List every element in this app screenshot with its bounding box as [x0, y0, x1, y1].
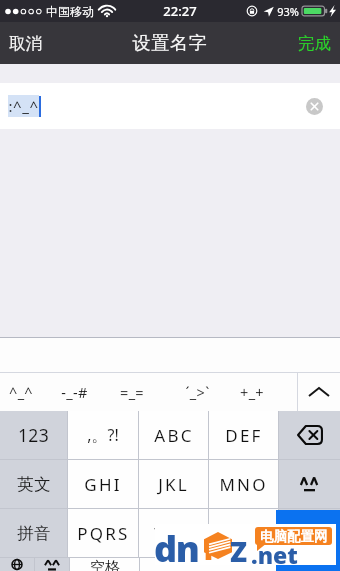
staticText: 空格 [90, 558, 120, 571]
staticText: :^_^ [8, 96, 39, 116]
staticText: MNO [219, 473, 268, 496]
staticText: 中国移动 [46, 4, 94, 19]
button[interactable]: del [279, 411, 340, 459]
staticText: 换行 [294, 558, 324, 571]
staticText: 拼音 [17, 523, 51, 544]
button[interactable]: WXYZ [209, 509, 278, 557]
staticText: ,。?! [87, 424, 119, 446]
staticText: dn [154, 524, 199, 571]
staticText: TUV [154, 522, 193, 545]
staticText: ^_^ [9, 382, 33, 402]
button[interactable]: MNO [209, 460, 278, 508]
button[interactable]: ´_>` [170, 372, 224, 411]
button[interactable] [140, 558, 276, 571]
staticText: -_-# [61, 382, 88, 402]
staticText: ABC [154, 424, 194, 447]
staticText: 22:27 [163, 2, 197, 20]
button[interactable]: ret [279, 509, 340, 557]
staticText: .net [251, 539, 298, 570]
staticText: 93% [277, 4, 299, 19]
staticText: =_= [120, 382, 144, 402]
staticText: WXYZ [217, 522, 271, 545]
button[interactable]: Switch language [0, 558, 34, 571]
button[interactable]: JKL [139, 460, 208, 508]
button[interactable]: DEF [209, 411, 278, 459]
staticText: DEF [225, 424, 263, 447]
staticText: 取消 [9, 33, 42, 54]
button[interactable]: 取消 [0, 22, 54, 64]
button[interactable]: Emoji [35, 558, 69, 571]
button[interactable]: Expand candidates [298, 372, 340, 411]
button[interactable]: ,。?! [68, 411, 138, 459]
button[interactable]: 英文 [0, 460, 67, 508]
button[interactable]: ^_^ [0, 372, 48, 411]
button[interactable]: 空格 [70, 558, 139, 571]
button[interactable]: Clear text [306, 98, 323, 115]
staticText: 完成 [298, 33, 331, 54]
button[interactable]: -_-# [47, 372, 101, 411]
button[interactable]: 拼音 [0, 509, 67, 557]
staticText: 设置名字 [132, 32, 208, 55]
staticText: 电脑配置网 [260, 528, 328, 545]
button[interactable]: ABC [139, 411, 208, 459]
staticText: PQRS [77, 522, 130, 545]
staticText: 英文 [17, 474, 51, 495]
staticText: +_+ [240, 382, 264, 402]
button[interactable]: =_= [105, 372, 159, 411]
staticText: Z [230, 532, 248, 570]
button[interactable]: TUV [139, 509, 208, 557]
button[interactable]: Return [277, 558, 340, 571]
button[interactable]: face [279, 460, 340, 508]
button[interactable]: 123 [0, 411, 67, 459]
staticText: JKL [158, 473, 189, 496]
staticText: 123 [18, 423, 49, 447]
button[interactable]: GHI [68, 460, 138, 508]
staticText: GHI [84, 473, 122, 496]
button[interactable]: PQRS [68, 509, 138, 557]
button[interactable]: +_+ [225, 372, 279, 411]
staticText: ´_>` [185, 382, 210, 402]
button[interactable]: 完成 [286, 22, 340, 64]
